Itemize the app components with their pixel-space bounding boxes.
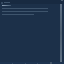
button[interactable]	[2, 5, 60, 6]
button[interactable]: Side rail	[60, 4, 62, 62]
